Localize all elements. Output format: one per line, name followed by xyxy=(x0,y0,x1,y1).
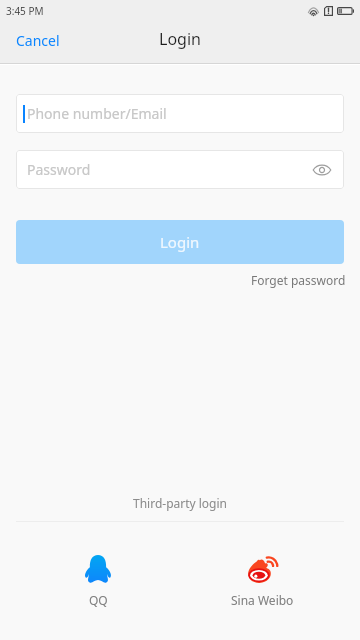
staticText: Login xyxy=(159,28,201,50)
button[interactable]: Sina Weibo xyxy=(180,553,344,610)
staticText: QQ xyxy=(89,592,108,608)
staticText: Cancel xyxy=(16,31,60,50)
button[interactable]: Cancel xyxy=(0,22,76,59)
button[interactable]: Show password xyxy=(311,159,333,181)
staticText: Third-party login xyxy=(0,495,360,511)
button[interactable]: Phone number/Email xyxy=(16,94,344,133)
staticText: Password xyxy=(27,160,91,179)
staticText: Sina Weibo xyxy=(231,592,294,608)
button[interactable]: Forget password xyxy=(235,264,360,297)
staticText: Login xyxy=(160,232,200,252)
staticText: Phone number/Email xyxy=(27,104,167,123)
button[interactable]: Login xyxy=(16,220,344,264)
button[interactable]: Password xyxy=(16,150,344,189)
button[interactable]: QQ xyxy=(16,553,180,610)
staticText: Forget password xyxy=(251,272,346,288)
staticText: 3:45 PM xyxy=(6,4,44,18)
